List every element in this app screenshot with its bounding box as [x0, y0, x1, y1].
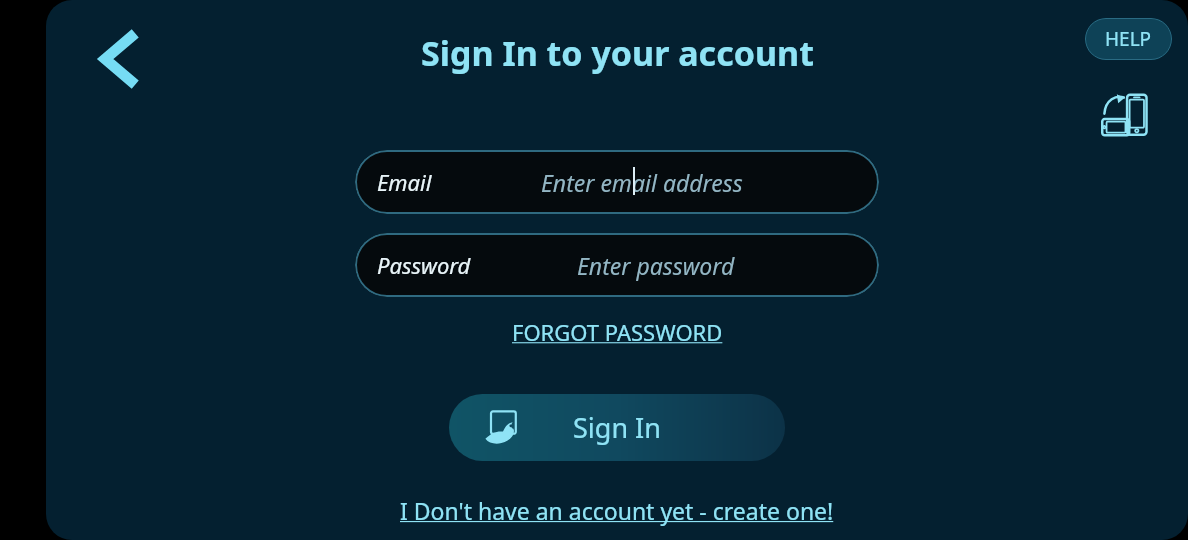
button[interactable]: I Don't have an account yet - create one…: [390, 491, 844, 530]
staticText: Enter password: [577, 250, 735, 281]
button[interactable]: HELP: [1085, 18, 1172, 60]
staticText: HELP: [1105, 26, 1152, 52]
staticText: Password: [377, 250, 471, 280]
staticText: I Don't have an account yet - create one…: [400, 495, 834, 526]
button[interactable]: Sign In: [449, 394, 785, 461]
staticText: Email: [377, 167, 432, 197]
staticText: Enter email address: [541, 167, 743, 198]
button[interactable]: Back: [82, 24, 150, 94]
button[interactable]: Email: [355, 150, 879, 214]
staticText: Sign In: [573, 409, 661, 446]
button[interactable]: Rotate device: [1096, 88, 1156, 148]
staticText: Sign In to your account: [421, 30, 814, 76]
button[interactable]: Password: [355, 233, 879, 297]
button[interactable]: FORGOT PASSWORD: [502, 313, 733, 351]
staticText: FORGOT PASSWORD: [512, 317, 723, 347]
